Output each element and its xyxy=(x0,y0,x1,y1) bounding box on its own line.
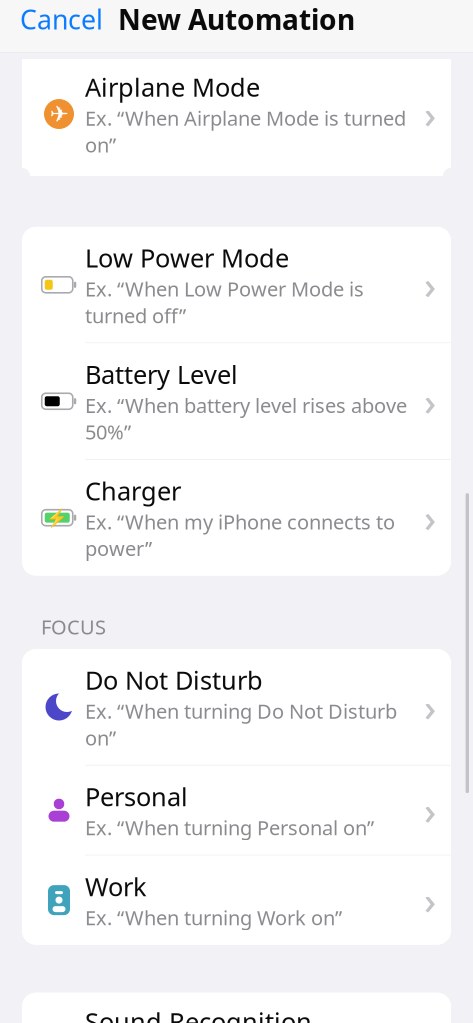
staticText: Cancel xyxy=(20,1,103,37)
button[interactable]: Sound Recognition xyxy=(22,993,451,1023)
button[interactable]: ✈ xyxy=(22,59,451,176)
staticText: Ex. “When turning Personal on” xyxy=(85,814,374,841)
button[interactable]: ⚡ xyxy=(22,460,451,576)
button[interactable]: Work xyxy=(22,855,451,945)
staticText: Battery Level xyxy=(85,357,238,391)
staticText: Ex. “When turning Work on” xyxy=(85,904,342,931)
button[interactable]: Cancel xyxy=(0,0,123,49)
button[interactable]: Low Power Mode xyxy=(22,227,451,343)
staticText: Low Power Mode xyxy=(85,241,289,274)
staticText: Do Not Disturb xyxy=(85,663,263,697)
staticText: ⚡ xyxy=(46,508,68,528)
staticText: Ex. “When Airplane Mode is turned on” xyxy=(85,105,406,158)
staticText: › xyxy=(424,875,436,925)
staticText: Personal xyxy=(85,780,188,813)
button[interactable]: Battery Level xyxy=(22,343,451,459)
staticText: Charger xyxy=(85,474,181,507)
staticText: Ex. “When my iPhone connects to power” xyxy=(85,508,395,562)
staticText: › xyxy=(424,89,436,139)
staticText: › xyxy=(424,493,436,542)
staticText: Airplane Mode xyxy=(85,70,260,104)
button[interactable]: Personal xyxy=(22,766,451,855)
staticText: ✈ xyxy=(49,101,68,127)
staticText: Sound Recognition xyxy=(85,1005,312,1023)
staticText: New Automation xyxy=(118,0,355,38)
staticText: Ex. “When Low Power Mode is turned off” xyxy=(85,275,364,329)
staticText: Ex. “When turning Do Not Disturb on” xyxy=(85,698,397,751)
staticText: › xyxy=(424,785,436,835)
staticText: › xyxy=(424,376,436,426)
staticText: › xyxy=(424,260,436,310)
staticText: FOCUS xyxy=(41,614,106,640)
staticText: Work xyxy=(85,869,147,903)
staticText: Ex. “When battery level rises above 50%” xyxy=(85,392,407,445)
staticText: › xyxy=(424,682,436,732)
button[interactable]: Do Not Disturb xyxy=(22,649,451,765)
